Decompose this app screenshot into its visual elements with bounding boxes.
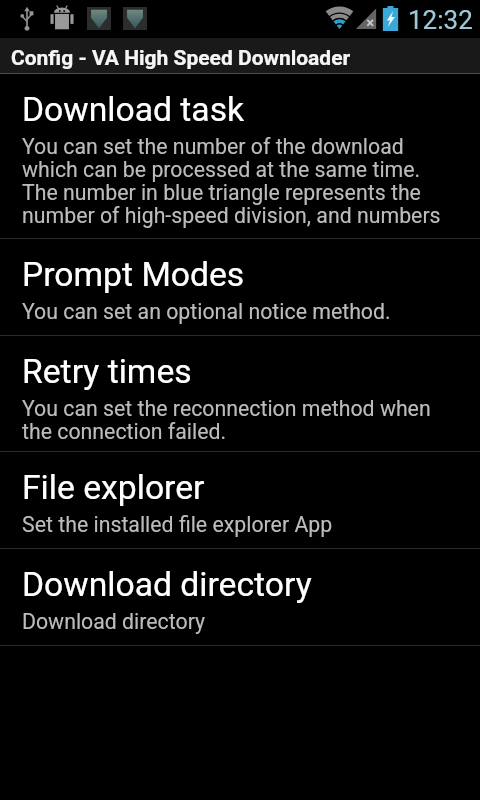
staticText: Set the installed file explorer App bbox=[22, 514, 333, 537]
staticText: File explorer bbox=[22, 468, 205, 507]
button[interactable]: Download task bbox=[0, 74, 480, 238]
button[interactable]: Retry times bbox=[0, 336, 480, 451]
staticText: 12:32 bbox=[408, 5, 474, 35]
other: Android system bbox=[50, 5, 74, 32]
staticText: You can set the number of the download w… bbox=[22, 136, 441, 228]
staticText: Retry times bbox=[22, 352, 192, 391]
other: Battery charging bbox=[382, 6, 399, 31]
other: Download in progress bbox=[87, 7, 111, 30]
staticText: Download directory bbox=[22, 611, 206, 634]
staticText: Download directory bbox=[22, 565, 312, 604]
staticText: Prompt Modes bbox=[22, 255, 245, 294]
staticText: Config - VA High Speed Downloader bbox=[11, 46, 351, 71]
button[interactable]: File explorer bbox=[0, 452, 480, 548]
staticText: You can set an optional notice method. bbox=[22, 301, 391, 324]
other: Wi-Fi signal bbox=[324, 7, 355, 29]
staticText: Download task bbox=[22, 90, 245, 129]
other: No mobile signal bbox=[355, 7, 377, 30]
staticText: You can set the reconnection method when… bbox=[22, 398, 431, 444]
button[interactable]: Download directory bbox=[0, 549, 480, 645]
other: Download in progress bbox=[123, 7, 147, 30]
other: USB connected bbox=[19, 6, 35, 32]
button[interactable]: Prompt Modes bbox=[0, 239, 480, 335]
